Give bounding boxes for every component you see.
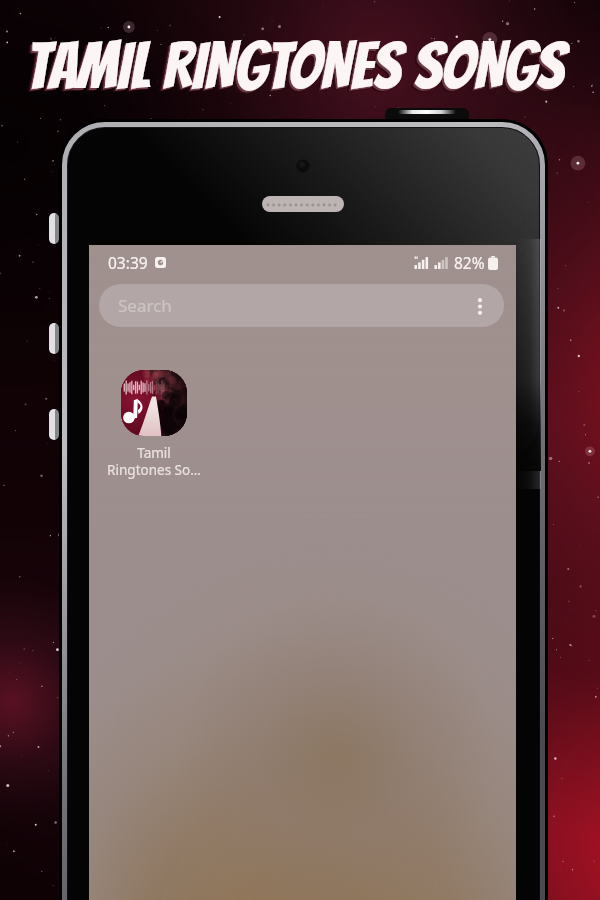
button[interactable]: More options [468,294,492,318]
button[interactable]: Search [99,284,504,327]
staticText: Search [118,294,172,317]
staticText: 82% [454,252,485,273]
staticText: 03:39 [108,252,148,273]
staticText: TAMIL RINGTONES SONGS [0,31,595,101]
staticText: Tamil Ringtones So… [107,444,201,479]
button[interactable]: Tamil Ringtones So… [104,370,204,479]
staticText: TAMIL RINGTONES SONGS [0,33,593,103]
staticText: TAMIL RINGTONES SONGS [0,34,591,104]
